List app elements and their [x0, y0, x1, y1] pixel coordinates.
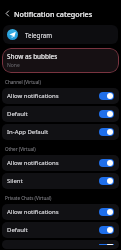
- staticText: Allow notifications: [7, 208, 59, 216]
- button[interactable]: Silent: [2, 173, 119, 189]
- button[interactable]: Default: [2, 106, 119, 122]
- button[interactable]: Toggle on: [99, 177, 114, 185]
- button[interactable]: Toggle on: [99, 159, 114, 167]
- staticText: In-App Default: [7, 128, 49, 136]
- button[interactable]: Toggle on: [99, 128, 114, 136]
- button[interactable]: In-App Default: [2, 124, 119, 140]
- button[interactable]: Toggle on: [99, 92, 114, 100]
- button[interactable]: Toggle on: [99, 208, 114, 216]
- staticText: Show as bubbles: [7, 52, 58, 61]
- button[interactable]: Default: [2, 222, 119, 238]
- staticText: Allow notifications: [7, 159, 59, 167]
- staticText: Allow notifications: [7, 92, 59, 100]
- staticText: None: [7, 62, 20, 69]
- button[interactable]: Toggle on: [99, 110, 114, 118]
- staticText: Default: [7, 226, 28, 234]
- staticText: Channel (Virtual): [5, 79, 41, 85]
- button[interactable]: In-App Default: [2, 240, 119, 249]
- button[interactable]: Toggle on: [99, 226, 114, 234]
- button[interactable]: Back: [0, 7, 14, 20]
- staticText: Telegram: [25, 31, 53, 39]
- staticText: Other (Virtual): [5, 146, 36, 152]
- button[interactable]: Toggle on: [99, 244, 114, 245]
- staticText: Default: [7, 110, 28, 118]
- button[interactable]: Allow notifications: [2, 204, 119, 220]
- staticText: Silent: [7, 177, 23, 185]
- button[interactable]: Telegram: [3, 25, 118, 44]
- button[interactable]: Show as bubbles: [2, 48, 119, 73]
- button[interactable]: Allow notifications: [2, 155, 119, 171]
- button[interactable]: Allow notifications: [2, 88, 119, 104]
- staticText: Notification categories: [14, 9, 93, 19]
- staticText: Private Chats (Virtual): [5, 195, 52, 201]
